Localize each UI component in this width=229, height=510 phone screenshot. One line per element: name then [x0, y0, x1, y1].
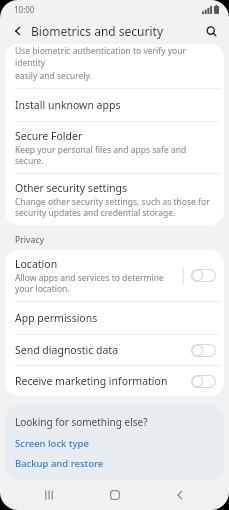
button[interactable]: Back: [163, 480, 197, 510]
staticText: easily and securely.: [15, 70, 92, 82]
staticText: Keep your personal files and apps safe a…: [15, 144, 212, 166]
staticText: Looking for something else?: [15, 415, 148, 429]
button[interactable]: Other security settings: [5, 174, 224, 225]
button[interactable]: Install unknown apps: [5, 89, 224, 121]
staticText: App permissions: [15, 311, 98, 325]
staticText: Receive marketing information: [15, 374, 185, 388]
button[interactable]: Backup and restore: [15, 457, 104, 470]
staticText: Use biometric authentication to verify y…: [15, 45, 214, 69]
button[interactable]: Search: [201, 21, 221, 41]
staticText: Backup and restore: [15, 457, 104, 470]
button[interactable]: Secure Folder: [5, 122, 224, 173]
button[interactable]: Location: [5, 250, 224, 301]
staticText: Install unknown apps: [15, 98, 121, 112]
staticText: Screen lock type: [15, 437, 89, 450]
button[interactable]: Toggle: [191, 375, 216, 388]
button[interactable]: Toggle: [191, 269, 216, 282]
button[interactable]: Toggle: [191, 344, 216, 357]
button[interactable]: Send diagnostic data: [5, 335, 224, 365]
staticText: Biometrics and security: [31, 23, 164, 39]
staticText: Send diagnostic data: [15, 343, 185, 357]
staticText: Privacy: [15, 234, 45, 246]
button[interactable]: Recents: [32, 480, 66, 510]
button[interactable]: Screen lock type: [15, 437, 89, 450]
button[interactable]: Use biometric authentication to verify y…: [5, 44, 224, 88]
staticText: Location: [15, 257, 58, 271]
staticText: Allow apps and services to determine you…: [15, 272, 177, 294]
staticText: Change other security settings, such as …: [15, 196, 212, 218]
button[interactable]: Receive marketing information: [5, 366, 224, 396]
button[interactable]: App permissions: [5, 302, 224, 334]
staticText: Other security settings: [15, 181, 128, 195]
staticText: 10:00: [14, 4, 35, 15]
button[interactable]: Home: [98, 480, 132, 510]
staticText: Secure Folder: [15, 129, 83, 143]
button[interactable]: Back: [8, 21, 28, 41]
